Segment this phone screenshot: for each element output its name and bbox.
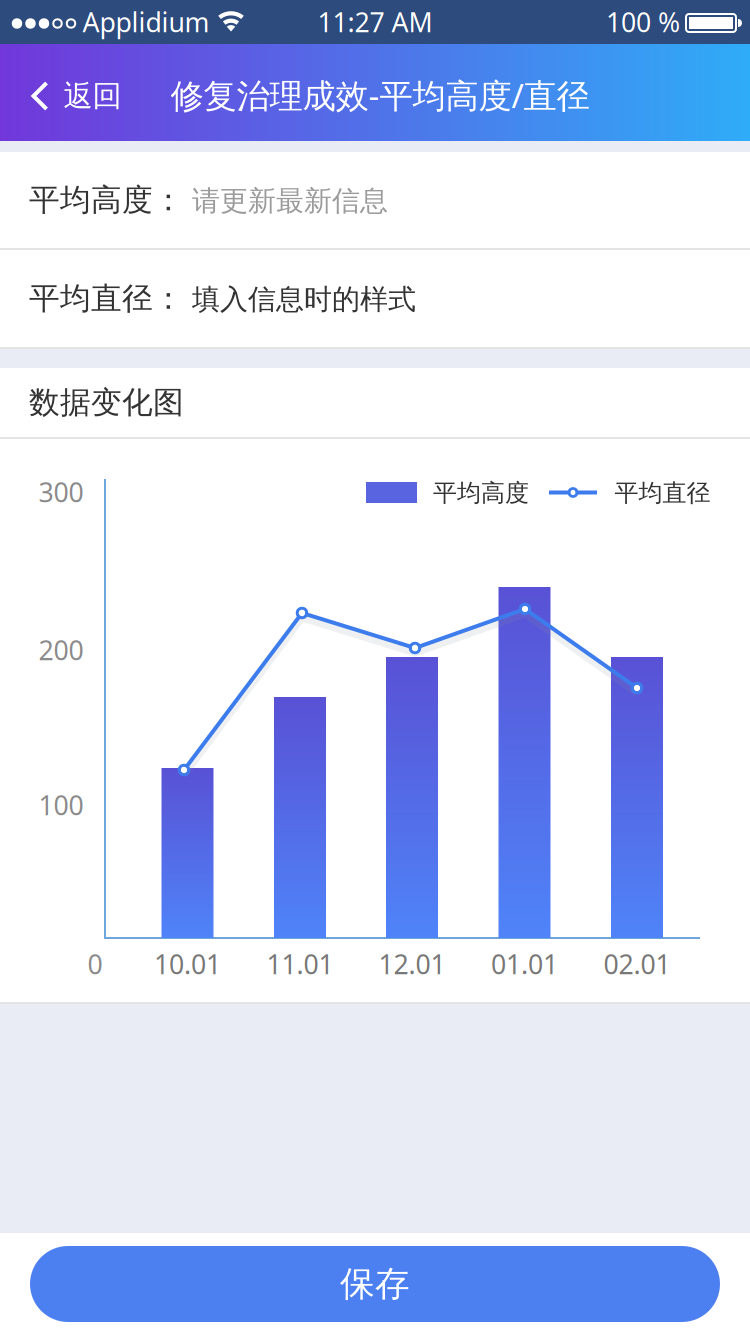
staticText: 填入信息时的样式: [192, 282, 416, 317]
staticText: 100 %: [606, 4, 680, 40]
staticText: 平均直径：: [29, 280, 184, 317]
staticText: Applidium: [82, 4, 209, 40]
staticText: 100: [38, 787, 83, 823]
button[interactable]: 平均高度：: [0, 152, 750, 248]
staticText: 数据变化图: [29, 384, 184, 421]
staticText: 11:27 AM: [317, 4, 432, 40]
staticText: 12.01: [378, 946, 445, 982]
staticText: 平均直径: [614, 478, 710, 508]
button[interactable]: 平均直径：: [0, 250, 750, 347]
staticText: 02.01: [603, 946, 670, 982]
staticText: 01.01: [491, 946, 558, 982]
staticText: 平均高度：: [29, 181, 184, 219]
button[interactable]: 返回: [30, 47, 121, 144]
staticText: 11.01: [266, 946, 333, 982]
staticText: 请更新最新信息: [192, 184, 388, 218]
staticText: 300: [38, 474, 83, 510]
staticText: 10.01: [154, 946, 221, 982]
staticText: 0: [87, 946, 102, 982]
staticText: 平均高度: [433, 478, 529, 508]
button[interactable]: 保存: [30, 1246, 720, 1322]
staticText: 修复治理成效-平均高度/直径: [170, 73, 589, 117]
staticText: 保存: [340, 1263, 410, 1305]
staticText: 200: [38, 632, 83, 668]
staticText: 返回: [63, 78, 121, 114]
